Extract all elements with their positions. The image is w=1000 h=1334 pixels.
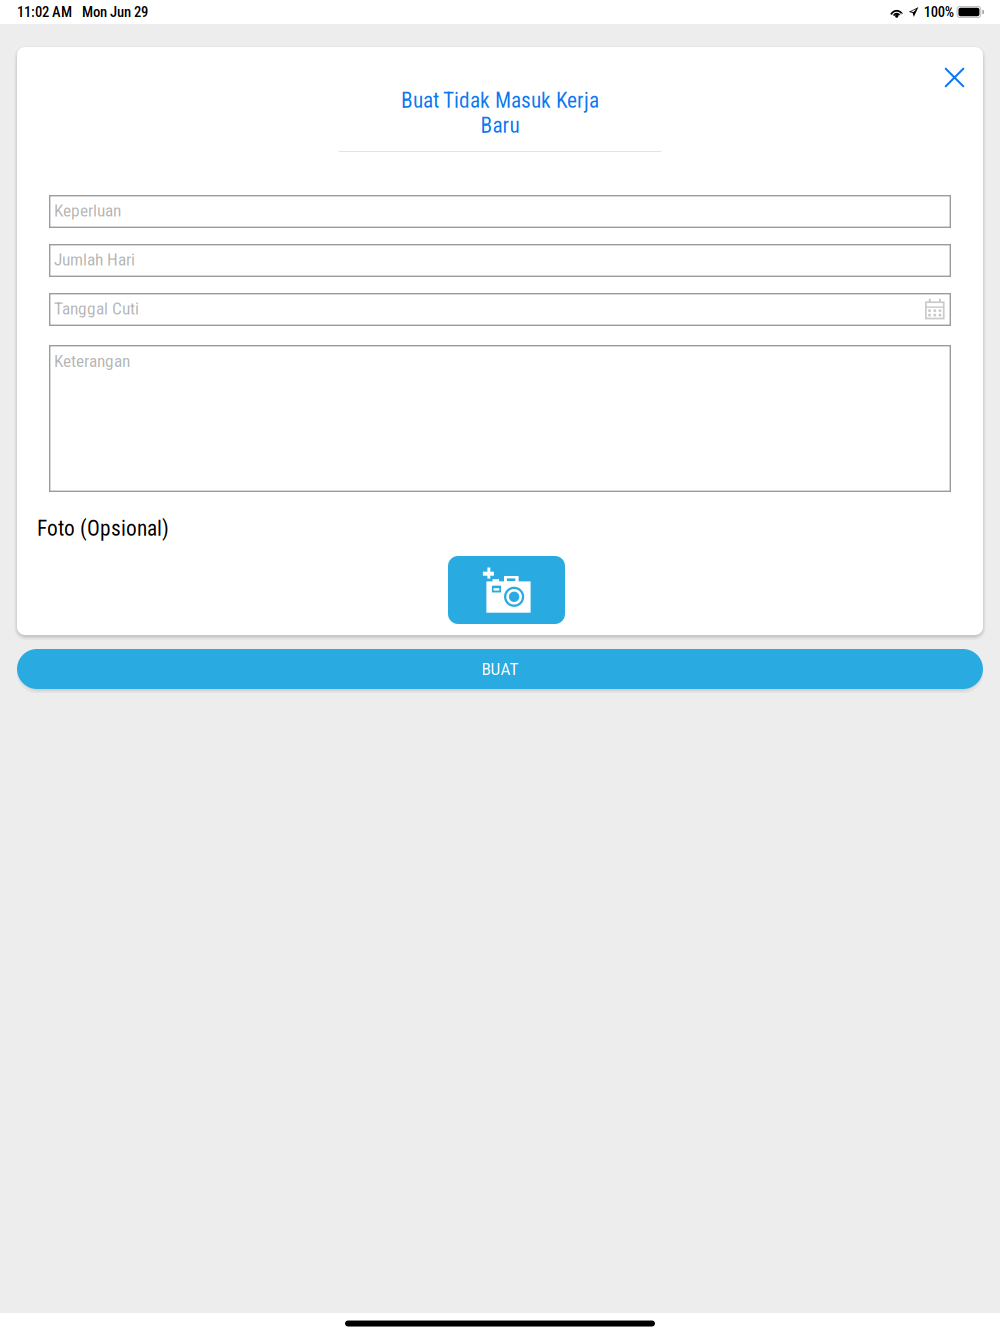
staticText: Baru	[480, 113, 519, 138]
staticText: Tanggal Cuti	[54, 298, 139, 319]
staticText: Jumlah Hari	[54, 249, 135, 270]
staticText: Foto (Opsional)	[37, 516, 169, 541]
button[interactable]: Keperluan	[49, 195, 951, 228]
staticText: Mon Jun 29	[82, 3, 148, 21]
button[interactable]: Tanggal Cuti	[49, 293, 951, 326]
staticText: 11:02 AM	[17, 3, 72, 21]
staticText: 100%	[924, 3, 954, 21]
staticText: BUAT	[481, 659, 518, 679]
staticText: Keperluan	[54, 200, 121, 221]
button[interactable]: Add photo	[448, 556, 565, 624]
button[interactable]: Keterangan	[49, 345, 951, 492]
button[interactable]: BUAT	[17, 649, 983, 689]
button[interactable]: Jumlah Hari	[49, 244, 951, 277]
staticText: Keterangan	[54, 351, 130, 371]
button[interactable]: Close	[944, 47, 983, 88]
staticText: Buat Tidak Masuk Kerja	[401, 88, 599, 113]
